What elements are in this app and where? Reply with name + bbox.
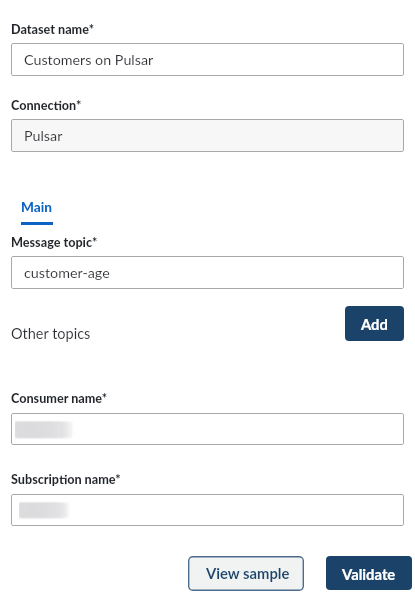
staticText: Subscription name*	[11, 472, 121, 487]
staticText: View sample	[206, 564, 290, 582]
staticText: Customers on Pulsar	[24, 51, 154, 68]
button[interactable]: Dataset name	[11, 43, 404, 76]
staticText: Message topic*	[11, 235, 98, 250]
staticText: Connection*	[11, 98, 82, 113]
button[interactable]: Main	[11, 190, 63, 225]
button[interactable]: Validate	[326, 556, 412, 590]
staticText: Consumer name*	[11, 391, 108, 406]
button[interactable]: Message topic	[11, 256, 404, 289]
staticText: Main	[21, 199, 52, 215]
button[interactable]: Consumer name	[11, 413, 404, 445]
button[interactable]: View sample	[188, 556, 304, 591]
button[interactable]: Subscription name	[11, 494, 404, 526]
staticText: Add	[361, 315, 388, 333]
button[interactable]: Add	[345, 306, 404, 341]
staticText: Pulsar	[24, 127, 63, 144]
staticText: Dataset name*	[11, 22, 95, 37]
staticText: Validate	[342, 565, 396, 583]
staticText: Other topics	[11, 325, 91, 342]
button[interactable]: Connection	[11, 119, 404, 152]
staticText: customer-age	[24, 264, 110, 281]
